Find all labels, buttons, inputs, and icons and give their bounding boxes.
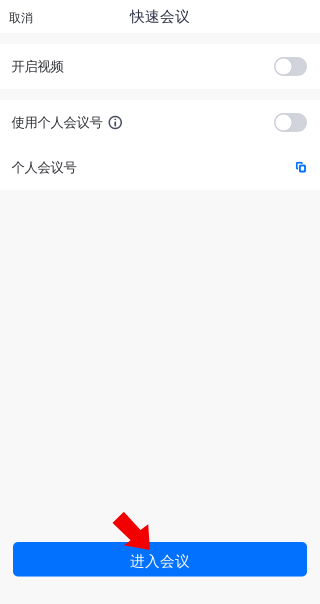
button[interactable]: 个人会议号 xyxy=(0,145,320,190)
staticText: 使用个人会议号 xyxy=(11,114,102,131)
button[interactable]: Copy personal meeting ID xyxy=(296,162,306,173)
button[interactable]: 开启视频 xyxy=(274,57,307,76)
button[interactable]: 使用个人会议号 xyxy=(0,100,320,145)
staticText: 取消 xyxy=(9,11,33,25)
button[interactable]: 取消 xyxy=(0,0,46,33)
button[interactable]: 进入会议 xyxy=(13,542,307,576)
staticText: 快速会议 xyxy=(130,7,190,25)
staticText: 个人会议号 xyxy=(11,159,76,176)
button[interactable]: 使用个人会议号 xyxy=(274,113,307,132)
staticText: 开启视频 xyxy=(11,58,63,75)
button[interactable]: 开启视频 xyxy=(0,44,320,89)
staticText: 进入会议 xyxy=(130,552,190,570)
button[interactable]: More info about personal meeting ID xyxy=(102,116,122,129)
